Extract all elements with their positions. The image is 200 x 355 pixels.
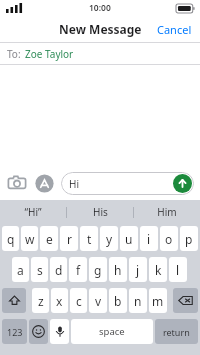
button[interactable]: n: [129, 288, 147, 313]
button[interactable]: j: [129, 257, 147, 282]
staticText: 123: [7, 326, 23, 338]
staticText: q: [7, 231, 15, 247]
button[interactable]: Delete: [173, 288, 198, 313]
staticText: e: [46, 231, 53, 247]
staticText: Him: [157, 205, 177, 219]
button[interactable]: 123: [2, 319, 27, 344]
button[interactable]: Cancel: [149, 18, 200, 41]
staticText: Hi: [69, 177, 79, 191]
button[interactable]: r: [60, 226, 78, 251]
button[interactable]: Camera: [6, 172, 28, 194]
staticText: m: [152, 293, 164, 309]
staticText: s: [37, 262, 43, 278]
staticText: To:: [7, 47, 21, 61]
staticText: v: [95, 293, 102, 309]
button[interactable]: a: [12, 257, 29, 282]
button[interactable]: Him: [134, 200, 200, 224]
staticText: His: [93, 205, 108, 219]
staticText: f: [76, 262, 81, 278]
staticText: Zoe Taylor: [25, 47, 74, 61]
staticText: t: [87, 231, 92, 247]
staticText: g: [94, 262, 102, 278]
button[interactable]: f: [69, 257, 87, 282]
staticText: “Hi”: [24, 205, 42, 219]
button[interactable]: v: [89, 288, 107, 313]
staticText: d: [55, 262, 63, 278]
button[interactable]: p: [180, 226, 198, 251]
button[interactable]: o: [160, 226, 178, 251]
button[interactable]: z: [32, 288, 49, 313]
button[interactable]: Hi: [61, 172, 194, 195]
staticText: Cancel: [157, 22, 192, 37]
staticText: x: [56, 293, 63, 309]
staticText: y: [106, 231, 113, 247]
staticText: c: [76, 293, 82, 309]
button[interactable]: w: [21, 226, 38, 251]
staticText: h: [114, 262, 122, 278]
button[interactable]: t: [80, 226, 98, 251]
button[interactable]: g: [89, 257, 107, 282]
button[interactable]: Shift: [2, 288, 26, 313]
staticText: z: [38, 293, 44, 309]
staticText: New Message: [59, 21, 142, 37]
staticText: n: [134, 293, 142, 309]
staticText: 10:00: [89, 2, 111, 14]
button[interactable]: “Hi”: [0, 200, 66, 224]
staticText: p: [185, 231, 193, 247]
button[interactable]: e: [40, 226, 58, 251]
button[interactable]: m: [149, 288, 167, 313]
button[interactable]: d: [50, 257, 67, 282]
button[interactable]: Apps: [33, 172, 55, 194]
button[interactable]: To:: [0, 43, 200, 65]
staticText: r: [67, 231, 72, 247]
button[interactable]: u: [120, 226, 138, 251]
staticText: l: [176, 262, 180, 278]
staticText: return: [163, 326, 190, 338]
button[interactable]: y: [100, 226, 118, 251]
button[interactable]: i: [140, 226, 158, 251]
staticText: i: [147, 231, 151, 247]
button[interactable]: h: [109, 257, 127, 282]
button[interactable]: space: [71, 319, 153, 344]
staticText: w: [25, 231, 35, 247]
staticText: o: [165, 231, 173, 247]
staticText: space: [99, 325, 125, 338]
staticText: k: [155, 262, 162, 278]
staticText: b: [114, 293, 122, 309]
button[interactable]: l: [169, 257, 187, 282]
button[interactable]: x: [51, 288, 68, 313]
button[interactable]: Emoji: [29, 319, 48, 344]
button[interactable]: Send: [173, 174, 192, 193]
button[interactable]: s: [31, 257, 48, 282]
button[interactable]: q: [2, 226, 19, 251]
staticText: j: [136, 262, 140, 278]
button[interactable]: k: [149, 257, 167, 282]
staticText: a: [17, 262, 24, 278]
staticText: u: [125, 231, 133, 247]
button[interactable]: return: [155, 319, 198, 344]
button[interactable]: b: [109, 288, 127, 313]
button[interactable]: His: [67, 200, 133, 224]
button[interactable]: Dictate: [50, 319, 69, 344]
button[interactable]: c: [70, 288, 87, 313]
